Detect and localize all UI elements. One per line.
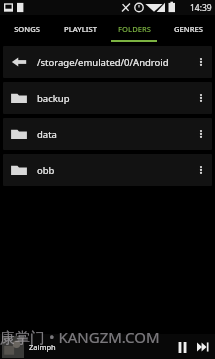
button[interactable]: More options [190, 82, 212, 114]
staticText: SONGS [14, 24, 40, 34]
button[interactable]: /storage/emulated/0/Android [3, 46, 212, 78]
staticText: obb [37, 164, 190, 177]
staticText: data [37, 128, 190, 141]
staticText: /storage/emulated/0/Android [37, 56, 190, 69]
staticText: Zaimph [29, 342, 56, 352]
button[interactable]: SONGS [0, 15, 53, 42]
staticText: 康掌门 • KANGZM.COM [0, 327, 160, 347]
button[interactable]: More options [190, 118, 212, 150]
button[interactable]: Next track [193, 336, 213, 358]
button[interactable]: Pause [171, 336, 193, 358]
button[interactable]: PLAYLIST [53, 15, 107, 42]
button[interactable]: GENRES [161, 15, 215, 42]
staticText: backup [37, 92, 190, 105]
button[interactable]: obb [3, 154, 212, 186]
button[interactable]: data [3, 118, 212, 150]
button[interactable]: More options [190, 46, 212, 78]
button[interactable]: More options [190, 154, 212, 186]
staticText: GENRES [174, 24, 203, 34]
staticText: FOLDERS [118, 24, 151, 34]
staticText: 14:39 [190, 2, 212, 14]
button[interactable]: backup [3, 82, 212, 114]
button[interactable]: Zaimph [0, 334, 215, 359]
button[interactable]: FOLDERS [107, 15, 161, 42]
staticText: PLAYLIST [64, 24, 97, 34]
